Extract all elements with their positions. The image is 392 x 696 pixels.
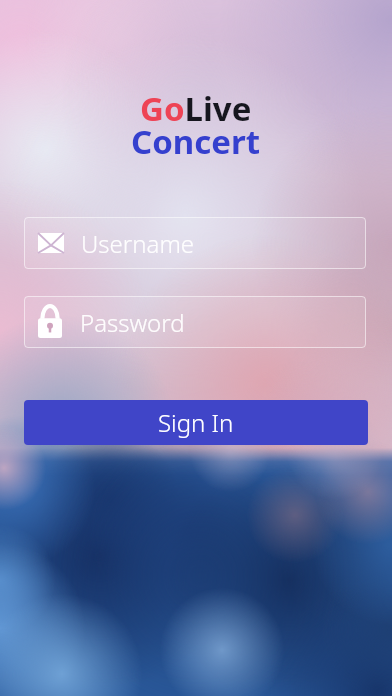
staticText: Sign In [158, 406, 234, 439]
button[interactable]: Sign In [24, 400, 368, 445]
staticText: Concert [131, 119, 261, 164]
staticText: Password [80, 306, 185, 339]
staticText: GoLive [140, 86, 252, 131]
button[interactable]: Password [24, 296, 366, 348]
staticText: Username [81, 227, 195, 260]
button[interactable]: Username [24, 217, 366, 269]
